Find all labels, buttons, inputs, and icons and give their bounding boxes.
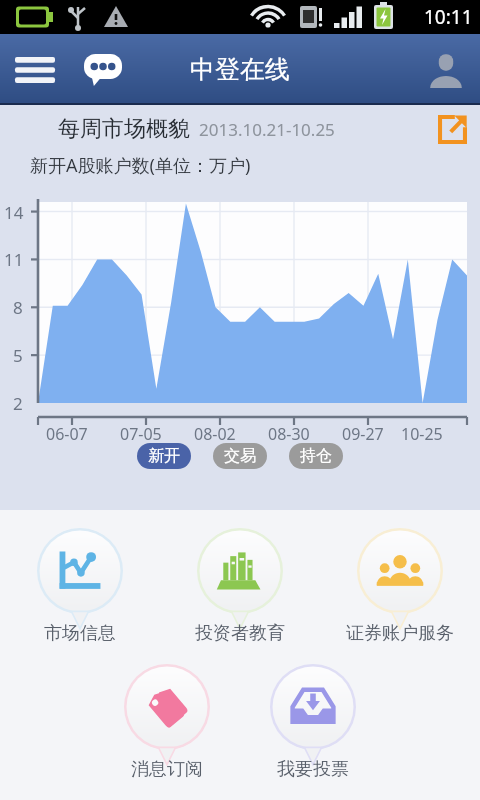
staticText: 07-05 [120, 423, 162, 445]
staticText: 每周市场概貌 [58, 115, 190, 143]
staticText: 8 [13, 296, 23, 319]
button[interactable]: 消息订阅 [97, 662, 237, 781]
staticText: 我要投票 [277, 758, 349, 781]
button[interactable]: 市场信息 [10, 526, 150, 645]
staticText: 证券账户服务 [346, 622, 454, 645]
staticText: 06-07 [46, 423, 88, 445]
button[interactable]: 证券账户服务 [330, 526, 470, 645]
staticText: 投资者教育 [195, 622, 285, 645]
staticText: 持仓 [300, 446, 332, 466]
staticText: 市场信息 [44, 622, 116, 645]
button[interactable]: 我要投票 [243, 662, 383, 781]
staticText: 10:11 [424, 4, 473, 30]
button[interactable]: Share [432, 109, 472, 149]
button[interactable]: 交易 [213, 443, 267, 469]
staticText: 2 [13, 392, 23, 415]
staticText: 新开 [148, 446, 180, 466]
staticText: 2013.10.21-10.25 [199, 118, 335, 141]
staticText: 09-27 [342, 423, 384, 445]
staticText: 11 [4, 248, 24, 271]
button[interactable]: Menu [8, 43, 62, 97]
button[interactable]: 持仓 [289, 443, 343, 469]
staticText: 中登在线 [190, 54, 290, 85]
button[interactable]: Profile [420, 44, 472, 96]
staticText: 14 [4, 201, 24, 224]
button[interactable]: Messages [76, 43, 130, 97]
staticText: 消息订阅 [131, 758, 203, 781]
staticText: 5 [13, 344, 23, 367]
staticText: 新开A股账户数(单位：万户) [30, 153, 251, 178]
staticText: 10-25 [401, 423, 443, 445]
button[interactable]: 新开 [137, 443, 191, 469]
button[interactable]: 投资者教育 [170, 526, 310, 645]
staticText: 交易 [224, 446, 256, 466]
staticText: 08-30 [268, 423, 310, 445]
staticText: 08-02 [194, 423, 236, 445]
